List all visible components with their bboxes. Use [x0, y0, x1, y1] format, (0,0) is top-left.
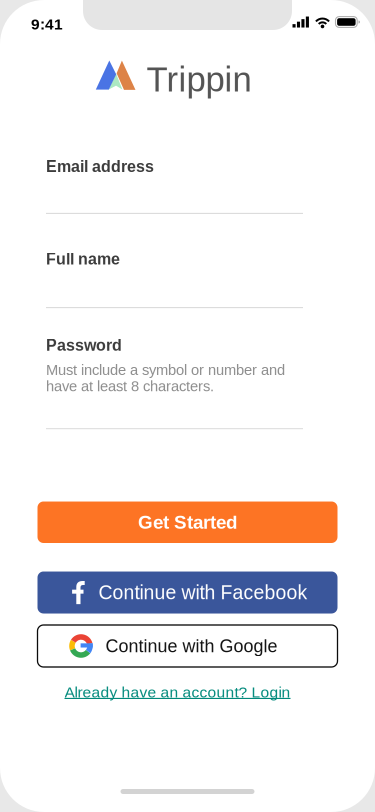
- staticText: Full name: [46, 250, 120, 268]
- staticText: Continue with Google: [105, 636, 277, 656]
- staticText: 9:41: [31, 15, 63, 33]
- staticText: Already have an account? Login: [64, 683, 290, 701]
- staticText: Get Started: [138, 512, 237, 533]
- staticText: Must include a symbol or number and have…: [46, 362, 285, 394]
- staticText: Continue with Facebook: [98, 582, 307, 603]
- staticText: Trippin: [146, 60, 251, 99]
- button[interactable]: Continue with Facebook: [37, 571, 337, 613]
- staticText: Password: [46, 336, 122, 354]
- button[interactable]: Get Started: [37, 501, 337, 543]
- button[interactable]: Continue with Google: [37, 625, 337, 667]
- button[interactable]: Already have an account? Login: [57, 681, 297, 703]
- staticText: Email address: [46, 157, 154, 175]
